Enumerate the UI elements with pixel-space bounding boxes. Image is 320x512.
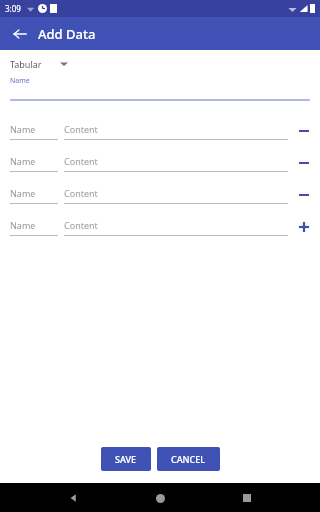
staticText: Name [10,187,36,199]
staticText: Content [64,123,98,135]
staticText: Add Data [38,25,96,43]
button[interactable]: Content [64,219,288,236]
staticText: 3:09 [5,3,21,14]
staticText: Tabular [10,58,42,70]
button[interactable]: Back [59,484,87,512]
staticText: Content [64,155,98,167]
button[interactable]: Remove row [294,121,314,141]
staticText: Name [10,123,36,135]
staticText: CANCEL [171,453,206,465]
button[interactable]: Content [64,155,288,172]
button[interactable]: Back [6,20,34,48]
staticText: Name [10,219,36,231]
button[interactable]: Name [10,187,58,204]
button[interactable]: Remove row [294,153,314,173]
button[interactable]: Name [10,123,58,140]
button[interactable]: Name [10,219,58,236]
button[interactable]: Name [10,76,310,101]
button[interactable]: Content [64,187,288,204]
staticText: Name [10,155,36,167]
button[interactable]: Name [10,155,58,172]
button[interactable]: CANCEL [157,447,220,471]
button[interactable]: SAVE [101,447,151,471]
staticText: SAVE [115,453,137,465]
button[interactable]: Remove row [294,185,314,205]
staticText: Name [10,76,30,86]
staticText: Content [64,219,98,231]
staticText: Content [64,187,98,199]
button[interactable]: Add row [294,217,314,237]
button[interactable]: Home [146,484,174,512]
button[interactable]: Tabular [10,58,68,70]
button[interactable]: Content [64,123,288,140]
button[interactable]: Recents [233,484,261,512]
